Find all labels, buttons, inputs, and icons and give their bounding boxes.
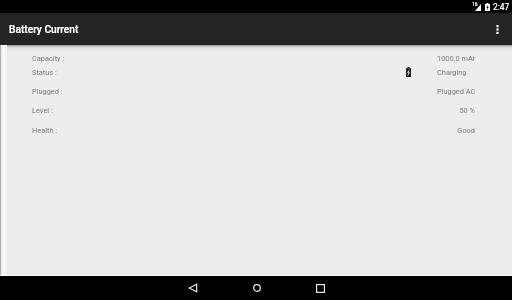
staticText: 1000.0 mAh	[437, 54, 475, 63]
button[interactable]: Level :	[0, 106, 512, 118]
staticText: 16	[472, 1, 478, 7]
staticText: Battery Current	[9, 24, 79, 36]
button[interactable]: Status :	[0, 68, 512, 80]
staticText: Good	[437, 126, 475, 135]
staticText: 2:47	[493, 2, 510, 12]
staticText: Health :	[32, 126, 58, 135]
button[interactable]: Plugged :	[0, 87, 512, 99]
staticText: 50 %	[437, 106, 475, 115]
button[interactable]: Back	[180, 276, 205, 300]
staticText: Plugged AC	[437, 87, 475, 96]
button[interactable]: Home	[244, 276, 269, 300]
staticText: Charging	[437, 68, 475, 77]
staticText: Status :	[32, 68, 57, 77]
staticText: Capacity :	[32, 54, 65, 63]
button[interactable]: Capacity :	[0, 54, 512, 66]
button[interactable]: More options	[484, 13, 510, 45]
button[interactable]: Health :	[0, 126, 512, 138]
button[interactable]: Recents	[308, 276, 333, 300]
staticText: Level :	[32, 106, 53, 115]
staticText: Plugged :	[32, 87, 63, 96]
